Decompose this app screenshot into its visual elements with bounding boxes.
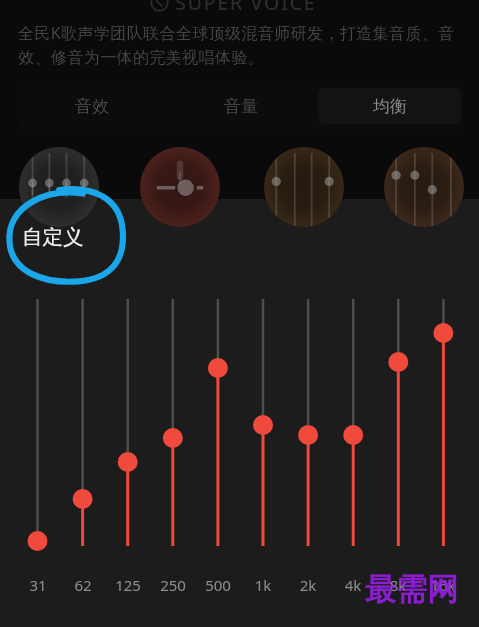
staticText: 音效: [75, 96, 109, 117]
button[interactable]: Preset 2: [264, 147, 344, 227]
button[interactable]: Preset 0: [19, 147, 99, 227]
staticText: 最需网: [365, 570, 458, 609]
staticText: 2k: [288, 575, 328, 595]
staticText: 效、修音为一体的完美视唱体验。: [18, 48, 264, 68]
staticText: 1k: [243, 575, 283, 595]
staticText: 均衡: [373, 96, 407, 117]
button[interactable]: Preset 1: [140, 147, 220, 227]
staticText: 31: [18, 575, 58, 595]
staticText: 4k: [333, 575, 373, 595]
staticText: 250: [153, 575, 193, 595]
button[interactable]: 音量: [169, 88, 312, 124]
button[interactable]: 音效: [21, 88, 163, 124]
button[interactable]: Preset 3: [384, 147, 464, 227]
staticText: 音量: [224, 96, 258, 117]
button[interactable]: 均衡: [318, 88, 461, 124]
staticText: 125: [108, 575, 148, 595]
button[interactable]: 自定义: [22, 224, 84, 250]
staticText: 62: [63, 575, 103, 595]
staticText: 8k: [378, 575, 418, 595]
staticText: 500: [198, 575, 238, 595]
staticText: SUPER VOICE: [175, 0, 317, 16]
staticText: 全民K歌声学团队联合全球顶级混音师研发，打造集音质、音: [18, 22, 455, 44]
staticText: 16k: [423, 575, 463, 595]
